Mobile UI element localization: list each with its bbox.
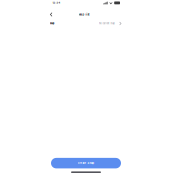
button[interactable]: Create a map (51, 158, 121, 168)
button[interactable]: The current map (98, 22, 121, 25)
button[interactable]: Back (47, 10, 55, 19)
staticText: Map (50, 22, 54, 25)
staticText: The current map (98, 22, 114, 25)
staticText: 12:34 (52, 1, 60, 4)
staticText: Create a map (77, 162, 94, 165)
staticText: Map list (78, 13, 89, 16)
